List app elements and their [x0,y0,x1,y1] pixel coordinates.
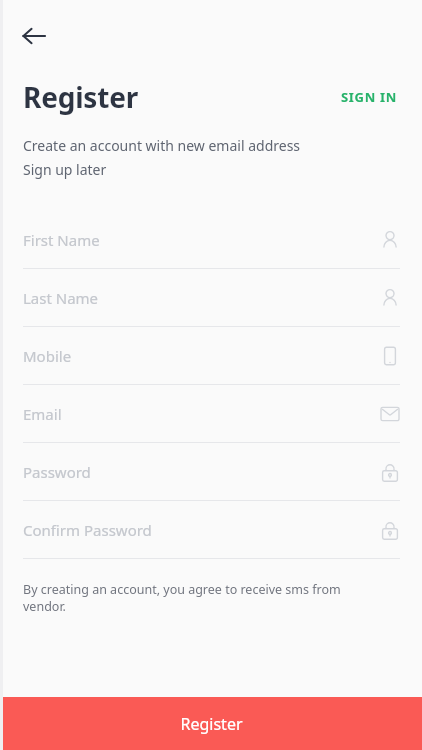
staticText: By creating an account, you agree to rec… [23,581,367,615]
button[interactable]: Email [0,385,422,443]
staticText: Mobile [23,346,72,366]
button[interactable]: Last Name [0,269,422,327]
button[interactable]: Confirm Password [0,501,422,559]
button[interactable]: SIGN IN [339,82,400,112]
staticText: Register [23,78,138,116]
button[interactable]: Sign up later [23,160,107,179]
staticText: Sign up later [23,160,107,179]
staticText: Password [23,462,91,482]
staticText: Create an account with new email address [23,136,301,155]
button[interactable]: Back [10,12,58,60]
button[interactable]: Mobile [0,327,422,385]
staticText: SIGN IN [341,88,398,106]
staticText: Last Name [23,288,99,308]
staticText: Confirm Password [23,520,152,540]
button[interactable]: First Name [0,211,422,269]
staticText: Email [23,404,62,424]
button[interactable]: Password [0,443,422,501]
button[interactable]: Register [0,697,422,750]
staticText: Register [180,713,243,735]
staticText: First Name [23,230,100,250]
